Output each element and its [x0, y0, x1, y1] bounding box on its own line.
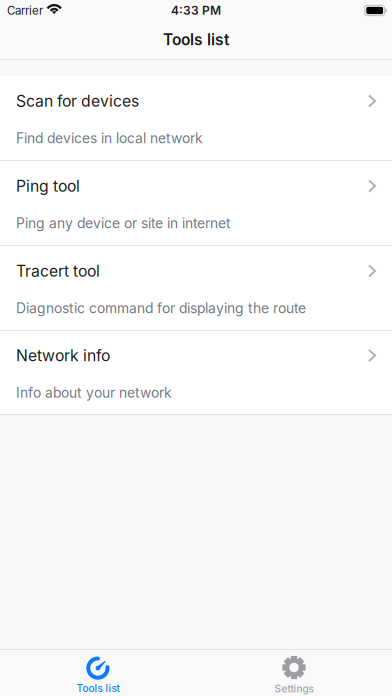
button[interactable]: Tracert tool	[0, 246, 392, 330]
staticText: Network info	[16, 346, 110, 365]
button[interactable]: Ping tool	[0, 161, 392, 245]
staticText: Diagnostic command for displaying the ro…	[16, 300, 306, 317]
staticText: Ping tool	[16, 176, 80, 195]
button[interactable]: Scan for devices	[0, 76, 392, 160]
staticText: Find devices in local network	[16, 130, 203, 147]
staticText: Settings	[274, 683, 313, 695]
staticText: Tracert tool	[16, 261, 100, 280]
staticText: Info about your network	[16, 384, 172, 401]
staticText: Ping any device or site in internet	[16, 215, 231, 232]
staticText: 4:33 PM	[171, 3, 221, 18]
staticText: Carrier	[7, 4, 43, 17]
button[interactable]: Tools list	[0, 650, 196, 696]
staticText: Tools list	[76, 682, 119, 694]
staticText: Tools list	[163, 30, 229, 49]
button[interactable]: Settings	[196, 650, 392, 696]
staticText: Scan for devices	[16, 91, 139, 110]
button[interactable]: Network info	[0, 331, 392, 414]
